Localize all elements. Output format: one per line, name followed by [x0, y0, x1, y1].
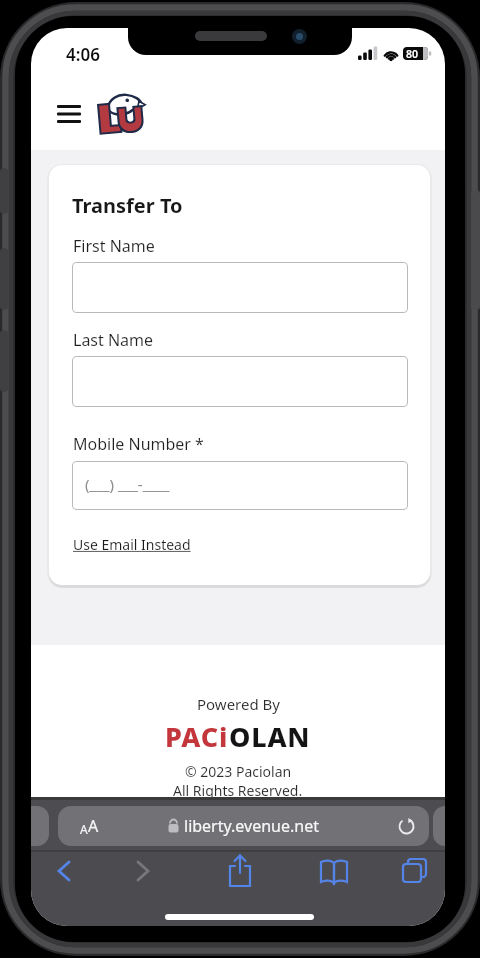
staticText: First Name	[73, 235, 155, 257]
button[interactable]	[399, 856, 433, 888]
staticText: PACi	[165, 718, 229, 755]
staticText: Mobile Number *	[73, 433, 204, 455]
staticText: 4:06	[66, 43, 100, 66]
staticText: © 2023 Paciolan	[185, 762, 292, 781]
button[interactable]	[72, 356, 408, 407]
button[interactable]	[72, 262, 408, 313]
staticText: All Rights Reserved.	[173, 781, 303, 800]
staticText: 80	[406, 47, 419, 61]
staticText: Last Name	[73, 329, 154, 351]
button[interactable]	[317, 856, 351, 888]
staticText: liberty.evenue.net	[184, 815, 319, 837]
button[interactable]: Use Email Instead	[73, 535, 191, 554]
staticText: Transfer To	[72, 192, 183, 219]
staticText: OLAN	[229, 718, 311, 755]
button[interactable]	[224, 853, 256, 891]
button[interactable]	[95, 94, 145, 136]
staticText: Powered By	[197, 694, 280, 714]
button[interactable]: A	[58, 806, 429, 846]
staticText: A	[80, 821, 88, 837]
button[interactable]: (___) ___-____	[72, 461, 408, 510]
staticText: (___) ___-____	[85, 474, 170, 494]
button[interactable]	[126, 858, 158, 888]
button[interactable]	[49, 858, 81, 888]
button[interactable]	[57, 98, 87, 128]
staticText: A	[88, 815, 99, 837]
